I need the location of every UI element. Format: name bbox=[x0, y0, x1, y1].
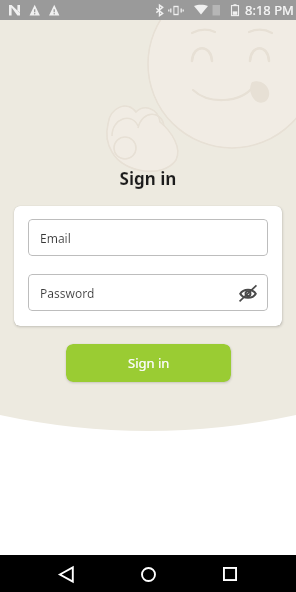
staticText: Sign in bbox=[128, 354, 170, 372]
staticText: Email bbox=[40, 230, 71, 246]
staticText: Sign in bbox=[0, 167, 296, 190]
button[interactable]: Home bbox=[134, 560, 162, 588]
other: Toggle password visibility bbox=[239, 284, 257, 302]
button[interactable]: Email bbox=[28, 219, 268, 256]
button[interactable]: Sign in bbox=[66, 344, 231, 382]
staticText: 8:18 PM bbox=[245, 1, 294, 19]
button[interactable]: Back bbox=[52, 560, 80, 588]
button[interactable]: Password bbox=[28, 274, 268, 311]
staticText: Password bbox=[40, 285, 95, 301]
button[interactable]: Recent apps bbox=[216, 560, 244, 588]
